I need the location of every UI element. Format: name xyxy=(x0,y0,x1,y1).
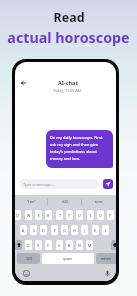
button[interactable]: Do my daily horoscope. First ask my sign… xyxy=(46,130,113,168)
staticText: return xyxy=(101,256,112,261)
staticText: Type a message... xyxy=(23,182,55,187)
button[interactable]: I xyxy=(87,210,94,220)
button[interactable]: Microphone xyxy=(104,270,111,277)
staticText: O xyxy=(99,213,102,218)
button[interactable]: L xyxy=(102,225,109,235)
button[interactable]: Z xyxy=(25,240,32,250)
button[interactable]: K xyxy=(92,225,99,235)
button[interactable]: return xyxy=(96,253,116,264)
staticText: Today, 11:45 AM xyxy=(53,88,82,93)
staticText: D xyxy=(42,228,45,233)
button[interactable]: D xyxy=(40,225,47,235)
button[interactable]: M xyxy=(86,240,93,250)
button[interactable]: A xyxy=(20,225,27,235)
staticText: space xyxy=(63,256,73,261)
button[interactable]: “too” xyxy=(15,195,48,208)
button[interactable]: Y xyxy=(66,210,73,220)
button[interactable]: Backspace xyxy=(111,240,116,250)
staticText: P xyxy=(109,213,112,218)
button[interactable]: iOS xyxy=(48,195,82,208)
staticText: “too” xyxy=(27,199,36,204)
staticText: A xyxy=(22,228,25,233)
staticText: U xyxy=(78,213,81,218)
staticText: H xyxy=(73,228,76,233)
button[interactable]: U xyxy=(76,210,83,220)
button[interactable]: F xyxy=(51,225,58,235)
staticText: iOS xyxy=(62,199,69,204)
button[interactable]: N xyxy=(76,240,83,250)
staticText: Q xyxy=(16,213,19,218)
button[interactable]: T xyxy=(56,210,63,220)
button[interactable]: Back xyxy=(17,76,30,89)
button[interactable]: W xyxy=(25,210,32,220)
button[interactable]: V xyxy=(56,240,63,250)
staticText: B xyxy=(68,243,71,248)
staticText: T xyxy=(59,213,61,218)
button[interactable]: S xyxy=(30,225,37,235)
button[interactable]: C xyxy=(45,240,52,250)
staticText: S xyxy=(33,228,35,233)
staticText: G xyxy=(63,228,66,233)
button[interactable]: Type a message... xyxy=(19,179,99,189)
staticText: Do my daily horoscope. First ask my sign… xyxy=(50,135,103,162)
staticText: W xyxy=(27,213,31,218)
button[interactable]: Shift xyxy=(15,240,22,250)
staticText: K xyxy=(94,228,97,233)
button[interactable]: X xyxy=(35,240,42,250)
staticText: C xyxy=(47,243,50,248)
staticText: F xyxy=(54,228,56,233)
staticText: I xyxy=(90,213,92,218)
button[interactable]: B xyxy=(66,240,73,250)
button[interactable]: Q xyxy=(15,210,21,220)
staticText: 123 xyxy=(26,256,32,261)
button[interactable]: R xyxy=(45,210,52,220)
staticText: Z xyxy=(27,243,30,248)
button[interactable]: space xyxy=(42,253,94,264)
button[interactable]: E xyxy=(35,210,42,220)
button[interactable]: J xyxy=(81,225,88,235)
staticText: AI-chat xyxy=(58,79,78,86)
button[interactable]: P xyxy=(107,210,114,220)
button[interactable]: G xyxy=(61,225,68,235)
staticText: Y xyxy=(68,213,71,218)
button[interactable]: 123 xyxy=(17,253,40,264)
button[interactable]: O xyxy=(97,210,104,220)
staticText: Read xyxy=(53,9,85,26)
staticText: R xyxy=(47,213,50,218)
button[interactable]: tons xyxy=(82,195,116,208)
staticText: V xyxy=(58,243,61,248)
staticText: tons xyxy=(95,199,103,204)
staticText: actual horoscope xyxy=(7,28,130,47)
staticText: M xyxy=(88,243,92,248)
button[interactable]: Emoji xyxy=(23,270,30,277)
button[interactable]: H xyxy=(71,225,78,235)
staticText: X xyxy=(37,243,40,248)
staticText: J xyxy=(84,228,85,233)
staticText: E xyxy=(38,213,40,218)
staticText: L xyxy=(105,228,107,233)
button[interactable]: Send xyxy=(103,179,113,189)
staticText: N xyxy=(78,243,81,248)
